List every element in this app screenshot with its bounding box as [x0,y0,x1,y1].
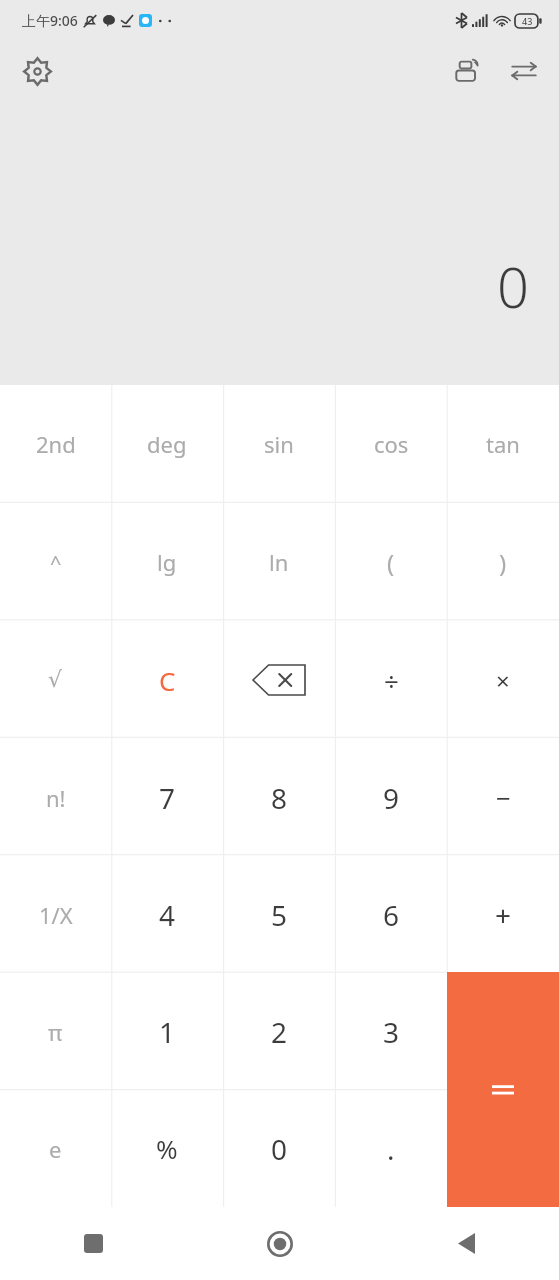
button[interactable]: Unit converter [501,48,547,94]
staticText: − [496,780,511,815]
button[interactable]: 1 [111,973,223,1090]
staticText: 4 [159,896,176,934]
staticText: √ [48,667,63,693]
staticText: e [49,1134,62,1164]
button[interactable]: 3 [335,973,447,1090]
staticText: 上午9:06 [22,11,78,30]
button[interactable]: ln [223,503,335,621]
staticText: 3 [383,1013,400,1051]
button[interactable]: Settings [14,48,60,94]
button[interactable]: 5 [223,856,335,973]
staticText: 6 [383,896,400,934]
button[interactable]: ( [335,503,447,621]
button[interactable]: 2 [223,973,335,1090]
staticText: 5 [271,896,288,934]
staticText: ÷ [384,663,399,698]
staticText: sin [264,429,294,459]
staticText: % [156,1131,178,1166]
staticText: ^ [50,549,62,576]
button[interactable]: 6 [335,856,447,973]
button[interactable]: sin [223,385,335,503]
staticText: π [48,1017,63,1047]
button[interactable]: e [0,1090,111,1207]
staticText: deg [147,429,187,459]
button[interactable]: Backspace [223,621,335,739]
button[interactable]: tan [447,385,559,503]
button[interactable]: ^ [0,503,111,621]
button[interactable]: . [335,1090,447,1207]
button[interactable]: 1/X [0,856,111,973]
button[interactable]: C [111,621,223,739]
button[interactable]: % [111,1090,223,1207]
staticText: 7 [159,779,176,817]
staticText: 0 [497,248,529,324]
staticText: 2 [271,1013,288,1051]
staticText: 2nd [36,429,76,459]
staticText: 43 [522,15,533,27]
button[interactable]: − [447,739,559,856]
button[interactable]: Home [187,1207,373,1280]
staticText: cos [374,429,409,459]
button[interactable]: π [0,973,111,1090]
staticText: ln [269,547,289,577]
staticText: n! [46,783,66,813]
staticText: + [495,896,512,934]
button[interactable]: 7 [111,739,223,856]
button[interactable]: cos [335,385,447,503]
staticText: × [496,664,510,697]
button[interactable]: 4 [111,856,223,973]
staticText: 9 [383,779,400,817]
button[interactable]: 9 [335,739,447,856]
button[interactable]: Equals [447,972,559,1207]
staticText: 8 [271,779,288,817]
staticText: ) [499,546,507,579]
staticText: C [159,663,176,698]
button[interactable]: 2nd [0,385,111,503]
button[interactable]: 8 [223,739,335,856]
staticText: tan [486,429,520,459]
button[interactable]: lg [111,503,223,621]
button[interactable]: + [447,856,559,973]
button[interactable]: ÷ [335,621,447,739]
staticText: . [387,1130,395,1168]
staticText: lg [157,547,177,577]
button[interactable]: √ [0,621,111,739]
button[interactable]: 0 [223,1090,335,1207]
button[interactable]: deg [111,385,223,503]
staticText: 0 [271,1130,288,1168]
button[interactable]: Recent apps [0,1207,187,1280]
staticText: 1 [159,1013,176,1051]
staticText: ( [387,546,395,579]
button[interactable]: Back [373,1207,559,1280]
button[interactable]: × [447,621,559,739]
button[interactable]: ) [447,503,559,621]
button[interactable]: Rotate screen [445,48,491,94]
staticText: 1/X [39,900,73,930]
button[interactable]: n! [0,739,111,856]
